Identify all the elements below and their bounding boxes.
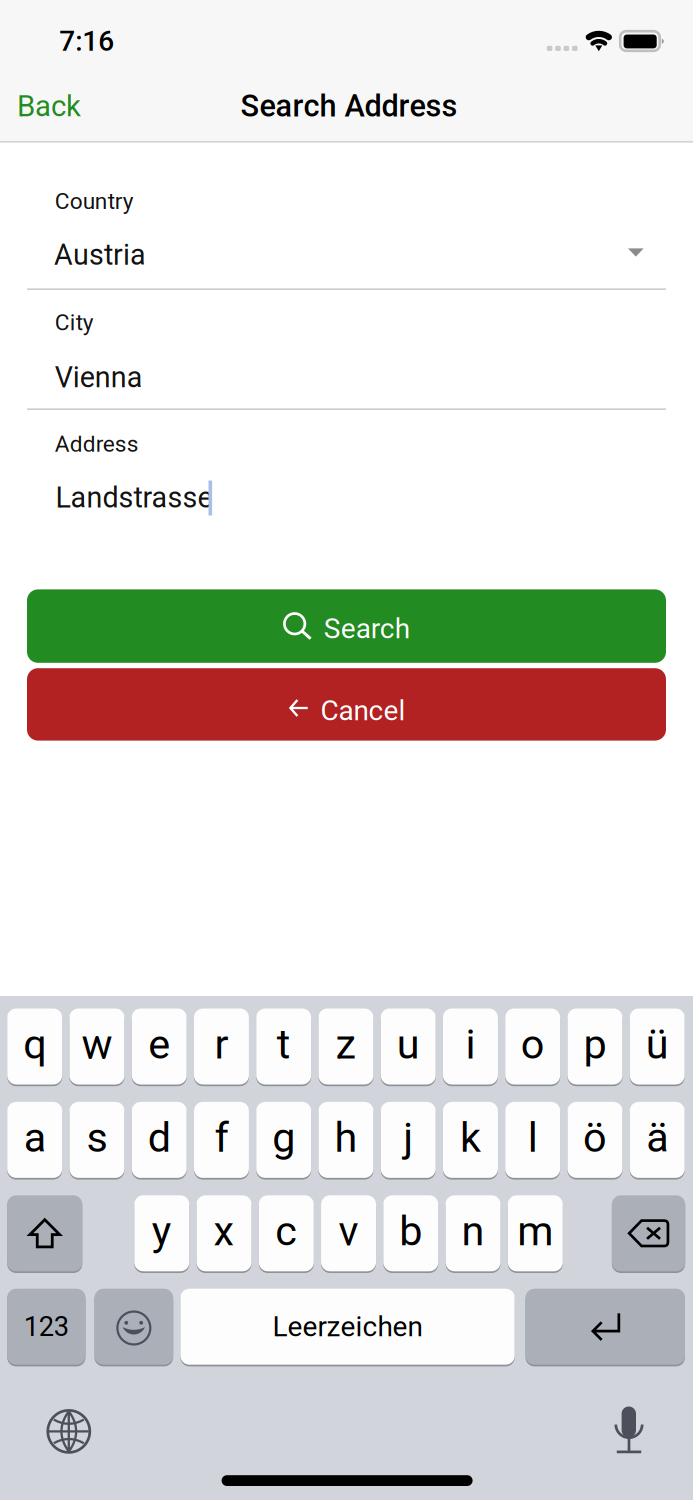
button[interactable]: Cancel — [0, 0, 693, 1500]
staticText: s — [86, 1113, 107, 1162]
button[interactable]: z — [0, 996, 693, 1500]
staticText: Back — [17, 89, 81, 123]
button[interactable]: j — [0, 996, 693, 1500]
staticText: l — [528, 1113, 538, 1162]
button[interactable]: g — [0, 996, 693, 1500]
button[interactable]: Delete — [0, 996, 693, 1500]
button[interactable]: n — [0, 996, 693, 1500]
staticText: t — [277, 1020, 291, 1068]
button[interactable]: o — [0, 996, 693, 1500]
button[interactable]: Emoji — [0, 996, 693, 1500]
staticText: m — [517, 1207, 553, 1255]
staticText: e — [148, 1020, 170, 1068]
staticText: ö — [583, 1113, 607, 1162]
staticText: b — [399, 1207, 422, 1255]
button[interactable]: Dictation — [0, 996, 693, 1500]
staticText: ä — [646, 1113, 668, 1162]
button[interactable]: t — [0, 996, 693, 1500]
staticText: 123 — [24, 1311, 69, 1343]
staticText: 7:16 — [59, 25, 114, 58]
staticText: Search — [324, 612, 410, 645]
staticText: v — [339, 1207, 359, 1255]
button[interactable]: Search — [0, 0, 693, 1500]
staticText: City — [55, 309, 94, 336]
button[interactable]: y — [0, 996, 693, 1500]
button[interactable]: ü — [0, 996, 693, 1500]
staticText: o — [521, 1020, 545, 1068]
staticText: d — [148, 1113, 171, 1162]
staticText: k — [460, 1113, 481, 1162]
staticText: q — [23, 1020, 46, 1068]
button[interactable]: Back — [0, 0, 693, 1500]
staticText: u — [397, 1020, 420, 1068]
button[interactable]: e — [0, 996, 693, 1500]
button[interactable]: ä — [0, 996, 693, 1500]
button[interactable]: a — [0, 996, 693, 1500]
staticText: z — [335, 1020, 356, 1068]
button[interactable]: b — [0, 996, 693, 1500]
staticText: Address — [55, 431, 139, 457]
button[interactable]: h — [0, 996, 693, 1500]
staticText: Leerzeichen — [273, 1310, 423, 1343]
staticText: Vienna — [55, 361, 143, 394]
button[interactable]: 123 — [0, 996, 693, 1500]
button[interactable]: i — [0, 996, 693, 1500]
button[interactable]: d — [0, 996, 693, 1500]
button[interactable]: Leerzeichen — [0, 996, 693, 1500]
staticText: Austria — [54, 238, 146, 272]
button[interactable]: v — [0, 996, 693, 1500]
staticText: g — [272, 1113, 295, 1162]
button[interactable]: s — [0, 996, 693, 1500]
button[interactable]: Next keyboard — [0, 996, 693, 1500]
staticText: Cancel — [320, 694, 405, 727]
button[interactable]: m — [0, 996, 693, 1500]
staticText: i — [465, 1020, 475, 1068]
staticText: f — [214, 1113, 228, 1162]
staticText: w — [81, 1020, 112, 1068]
staticText: y — [152, 1207, 172, 1255]
staticText: ü — [646, 1020, 669, 1068]
button[interactable]: f — [0, 996, 693, 1500]
staticText: j — [403, 1113, 413, 1162]
staticText: Country — [55, 188, 134, 215]
staticText: n — [462, 1207, 485, 1255]
button[interactable]: q — [0, 996, 693, 1500]
staticText: Search Address — [241, 88, 458, 124]
staticText: h — [334, 1113, 357, 1162]
button[interactable]: l — [0, 996, 693, 1500]
staticText: a — [24, 1113, 46, 1162]
staticText: x — [214, 1207, 235, 1255]
button[interactable]: Return — [0, 996, 693, 1500]
button[interactable]: Shift — [0, 996, 693, 1500]
staticText: p — [583, 1020, 606, 1068]
button[interactable]: c — [0, 996, 693, 1500]
button[interactable]: p — [0, 996, 693, 1500]
staticText: c — [275, 1207, 297, 1255]
button[interactable]: x — [0, 996, 693, 1500]
button[interactable]: k — [0, 996, 693, 1500]
button[interactable]: w — [0, 996, 693, 1500]
button[interactable]: r — [0, 996, 693, 1500]
button[interactable]: ö — [0, 996, 693, 1500]
button[interactable]: u — [0, 996, 693, 1500]
staticText: r — [214, 1020, 228, 1068]
staticText: Landstrasse — [55, 481, 212, 514]
